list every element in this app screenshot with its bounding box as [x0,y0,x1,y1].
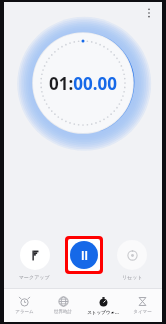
staticText: マークアップ [19,274,50,280]
staticText: ストップウォ… [87,309,119,315]
staticText: 世界時計 [54,309,72,315]
button[interactable]: ストップウォ… [84,294,122,317]
staticText: リセット [122,274,143,280]
button[interactable]: Reset [117,240,147,270]
button[interactable]: 世界時計 [44,294,82,317]
button[interactable]: タイマー [123,294,161,317]
button[interactable]: Pause [68,239,100,271]
staticText: タイマー [133,309,152,315]
staticText: 01:00.00 [49,72,117,95]
staticText: アラーム [15,309,34,315]
button[interactable]: More options [140,4,158,22]
button[interactable]: Lap [20,240,50,270]
button[interactable]: アラーム [5,294,43,317]
